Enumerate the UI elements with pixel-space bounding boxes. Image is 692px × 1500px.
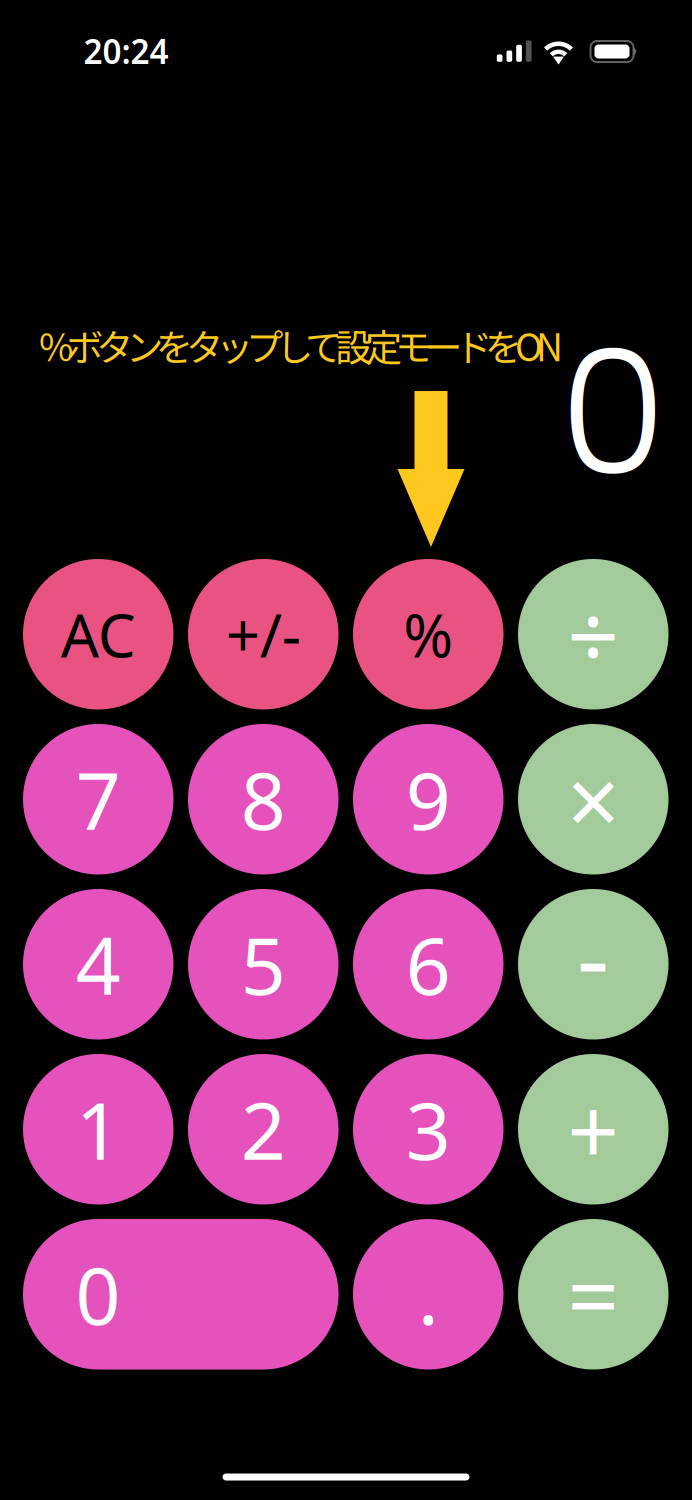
staticText: AC (61, 594, 136, 674)
staticText: 6 (406, 912, 451, 1016)
button[interactable]: + (518, 1054, 668, 1204)
staticText: 0 (75, 1242, 120, 1346)
staticText: 20:24 (83, 29, 168, 73)
button[interactable]: 1 (23, 1054, 173, 1204)
staticText: 2 (241, 1077, 286, 1181)
staticText: %ボタンをタップして設定モードをON (39, 318, 563, 372)
button[interactable]: 4 (23, 889, 173, 1039)
staticText: = (567, 1234, 619, 1354)
staticText: 4 (76, 912, 121, 1016)
button[interactable]: = (518, 1219, 668, 1369)
button[interactable]: 5 (188, 889, 338, 1039)
staticText: × (567, 737, 620, 861)
button[interactable]: 6 (353, 889, 503, 1039)
staticText: 1 (76, 1077, 121, 1181)
button[interactable]: AC (23, 559, 173, 709)
button[interactable]: 2 (188, 1054, 338, 1204)
staticText: 9 (406, 747, 451, 851)
button[interactable]: +/- (188, 559, 338, 709)
staticText: - (577, 888, 610, 1023)
button[interactable]: % (353, 559, 503, 709)
staticText: + (567, 1069, 619, 1189)
button[interactable]: - (518, 889, 668, 1039)
staticText: ÷ (567, 574, 619, 694)
staticText: +/- (226, 594, 301, 674)
staticText: 0 (559, 292, 666, 534)
button[interactable]: 9 (353, 724, 503, 874)
staticText: 7 (76, 747, 121, 851)
button[interactable]: . (353, 1219, 503, 1369)
staticText: % (403, 594, 453, 674)
staticText: 8 (241, 747, 286, 851)
button[interactable]: 7 (23, 724, 173, 874)
staticText: . (418, 1242, 439, 1346)
button[interactable]: 3 (353, 1054, 503, 1204)
button[interactable]: 8 (188, 724, 338, 874)
staticText: 5 (241, 912, 286, 1016)
button[interactable]: ÷ (518, 559, 668, 709)
button[interactable]: 0 (23, 1219, 338, 1369)
button[interactable]: × (518, 724, 668, 874)
staticText: 3 (406, 1077, 451, 1181)
